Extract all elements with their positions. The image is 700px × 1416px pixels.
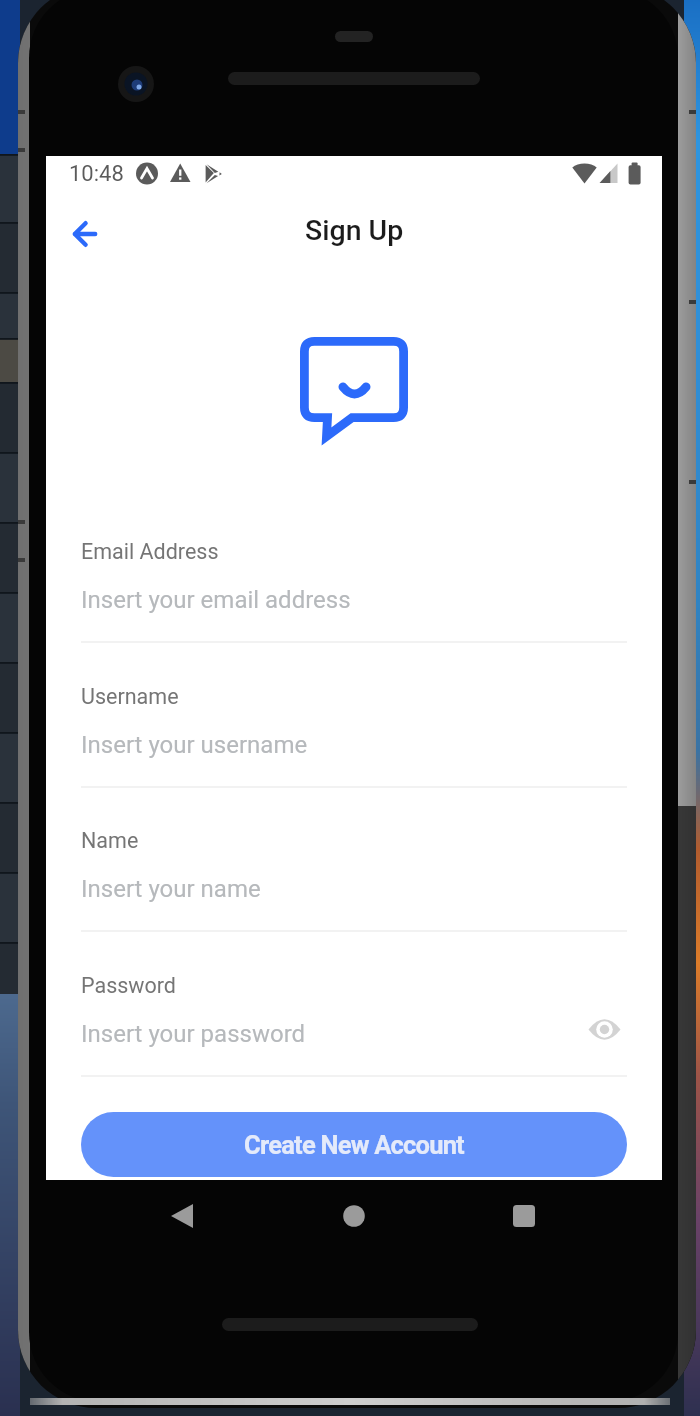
staticText: Username <box>81 684 179 709</box>
button[interactable]: Back <box>61 210 109 258</box>
staticText: Sign Up <box>305 214 404 247</box>
staticText: Insert your password <box>81 1020 306 1048</box>
button[interactable]: Show password <box>581 1006 627 1052</box>
staticText: Name <box>81 828 139 853</box>
staticText: 10:48 <box>69 161 124 187</box>
staticText: Insert your username <box>81 731 308 759</box>
button[interactable]: Create New Account <box>81 1112 627 1177</box>
staticText: Email Address <box>81 539 219 564</box>
staticText: Insert your name <box>81 875 261 903</box>
staticText: Insert your email address <box>81 586 351 614</box>
staticText: Create New Account <box>244 1130 464 1160</box>
staticText: Password <box>81 973 176 998</box>
